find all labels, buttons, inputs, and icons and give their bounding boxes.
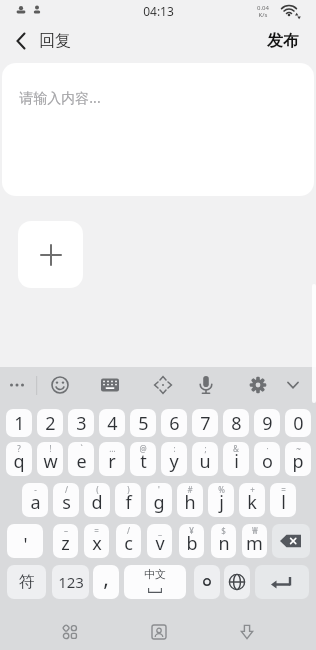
button[interactable]: 5 xyxy=(130,409,156,437)
button[interactable] xyxy=(194,565,220,599)
staticText: 2 xyxy=(45,411,56,436)
button[interactable]: … xyxy=(99,442,125,476)
staticText: w xyxy=(43,449,58,474)
button[interactable] xyxy=(255,565,309,599)
staticText: 7 xyxy=(200,411,211,436)
staticText: # xyxy=(187,484,193,495)
staticText: ₩ xyxy=(252,525,258,536)
staticText: v xyxy=(155,531,165,556)
staticText: 中文 xyxy=(144,567,166,581)
button[interactable]: = xyxy=(84,524,109,558)
button[interactable] xyxy=(188,369,224,401)
staticText: $ xyxy=(221,525,226,536)
button[interactable] xyxy=(6,27,36,55)
button[interactable]: 请输入内容... xyxy=(2,63,314,196)
button[interactable]: 发布 xyxy=(258,26,308,56)
staticText: ' xyxy=(23,532,28,557)
button[interactable]: · xyxy=(254,442,280,476)
button[interactable] xyxy=(141,615,177,649)
button[interactable]: ` xyxy=(68,442,94,476)
staticText: - xyxy=(34,484,37,495)
button[interactable]: 3 xyxy=(68,409,94,437)
button[interactable]: ' xyxy=(146,483,172,517)
staticText: = xyxy=(94,525,99,536)
button[interactable] xyxy=(0,369,35,401)
staticText: = xyxy=(281,484,286,495)
button[interactable]: : xyxy=(161,442,187,476)
button[interactable]: = xyxy=(270,483,296,517)
button[interactable]: ; xyxy=(192,442,218,476)
button[interactable] xyxy=(240,369,276,401)
staticText: @ xyxy=(139,443,147,454)
button[interactable]: 4 xyxy=(99,409,125,437)
button[interactable]: 符 xyxy=(7,565,46,599)
staticText: 6 xyxy=(169,411,180,436)
staticText: ; xyxy=(204,443,207,454)
staticText: 请输入内容... xyxy=(19,88,101,107)
staticText: y xyxy=(169,449,179,474)
button[interactable]: ₩ xyxy=(242,524,267,558)
staticText: / xyxy=(65,484,68,495)
button[interactable]: ? xyxy=(6,442,32,476)
button[interactable]: $ xyxy=(211,524,236,558)
button[interactable]: / xyxy=(53,483,79,517)
button[interactable]: 中文 xyxy=(124,565,186,599)
staticText: ! xyxy=(49,443,52,454)
staticText: ( xyxy=(96,484,99,495)
staticText: p xyxy=(292,449,304,474)
staticText: 0.04 K/s xyxy=(257,4,269,19)
button[interactable] xyxy=(42,369,78,401)
staticText: ¥ xyxy=(189,525,194,536)
staticText: k xyxy=(247,490,257,515)
button[interactable]: 6 xyxy=(161,409,187,437)
button[interactable]: @ xyxy=(130,442,156,476)
staticText: m xyxy=(246,531,263,556)
button[interactable] xyxy=(145,369,181,401)
staticText: + xyxy=(250,484,255,495)
staticText: c xyxy=(124,531,133,556)
staticText: n xyxy=(218,531,230,556)
button[interactable]: ¥ xyxy=(179,524,204,558)
staticText: d xyxy=(91,490,103,515)
staticText: & xyxy=(233,443,239,454)
button[interactable]: 7 xyxy=(192,409,218,437)
button[interactable]: 0 xyxy=(285,409,311,437)
button[interactable] xyxy=(18,221,83,288)
button[interactable] xyxy=(275,369,311,401)
button[interactable]: / xyxy=(116,524,141,558)
button[interactable]: ( xyxy=(84,483,110,517)
button[interactable]: 1 xyxy=(6,409,32,437)
button[interactable]: 123 xyxy=(52,565,89,599)
button[interactable]: # xyxy=(177,483,203,517)
button[interactable]: _ xyxy=(147,524,172,558)
button[interactable] xyxy=(52,615,88,649)
staticText: ) xyxy=(127,484,130,495)
staticText: s xyxy=(62,490,71,515)
button[interactable]: 2 xyxy=(37,409,63,437)
staticText: i xyxy=(234,449,239,474)
button[interactable]: ~ xyxy=(285,442,311,476)
button[interactable] xyxy=(272,524,310,558)
button[interactable] xyxy=(92,369,128,401)
staticText: q xyxy=(13,449,25,474)
button[interactable] xyxy=(224,565,250,599)
button[interactable]: ) xyxy=(115,483,141,517)
staticText: 5 xyxy=(138,411,149,436)
button[interactable]: ! xyxy=(37,442,63,476)
button[interactable]: 9 xyxy=(254,409,280,437)
button[interactable] xyxy=(229,615,265,649)
button[interactable]: ' xyxy=(7,524,43,558)
staticText: z xyxy=(61,531,70,556)
button[interactable]: & xyxy=(223,442,249,476)
staticText: 3 xyxy=(76,411,87,436)
button[interactable]: , xyxy=(93,565,119,599)
staticText: ' xyxy=(158,484,160,495)
button[interactable]: - xyxy=(22,483,48,517)
button[interactable]: % xyxy=(208,483,234,517)
button[interactable]: + xyxy=(239,483,265,517)
staticText: _ xyxy=(158,525,162,536)
button[interactable]: – xyxy=(53,524,78,558)
button[interactable]: 8 xyxy=(223,409,249,437)
staticText: u xyxy=(199,449,211,474)
staticText: · xyxy=(266,443,269,454)
